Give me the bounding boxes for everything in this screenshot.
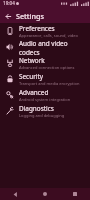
button[interactable]: Recents xyxy=(60,188,90,200)
staticText: Transport and media encryption xyxy=(19,81,80,86)
button[interactable]: Audio and video codecs xyxy=(0,39,90,55)
staticText: Diagnostics xyxy=(19,104,54,113)
staticText: Audio and video codecs xyxy=(19,39,86,55)
staticText: Settings xyxy=(16,11,44,21)
staticText: Appearance, calls, sound, video xyxy=(19,33,78,38)
staticText: Advanced xyxy=(19,88,49,97)
staticText: Preferences xyxy=(19,24,55,33)
staticText: Logging and debugging xyxy=(19,113,65,118)
button[interactable]: Diagnostics xyxy=(0,103,90,119)
button[interactable]: Security xyxy=(0,71,90,87)
staticText: Network xyxy=(19,56,45,65)
button[interactable]: Back xyxy=(0,9,16,23)
button[interactable]: Back xyxy=(0,188,30,200)
button[interactable]: Network xyxy=(0,55,90,71)
staticText: Security xyxy=(19,72,43,81)
staticText: 19:04 xyxy=(3,0,15,6)
button[interactable]: Preferences xyxy=(0,23,90,39)
button[interactable]: Home xyxy=(30,188,60,200)
staticText: Android system integration xyxy=(19,97,71,102)
staticText: Advanced connection options xyxy=(19,65,75,70)
button[interactable]: Advanced xyxy=(0,87,90,103)
